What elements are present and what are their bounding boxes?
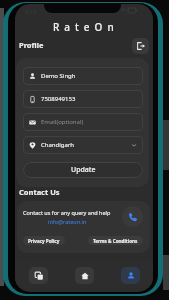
button[interactable]: Email(optional) <box>23 113 143 131</box>
staticText: RateOn <box>53 20 119 34</box>
staticText: Terms & Conditions <box>93 238 138 244</box>
button[interactable]: Terms & Conditions <box>88 236 143 245</box>
staticText: Privacy Policy <box>28 238 60 244</box>
button[interactable]: Demo Singh <box>23 67 143 85</box>
button[interactable]: Home <box>75 267 94 284</box>
button[interactable]: Documents <box>29 267 48 284</box>
button[interactable]: Privacy Policy <box>23 236 65 245</box>
staticText: Profile <box>19 40 44 50</box>
button[interactable]: Call <box>122 206 143 227</box>
staticText: Demo Singh <box>41 72 76 80</box>
button[interactable]: Chandigarh <box>23 136 143 154</box>
button[interactable]: Logout <box>132 38 149 54</box>
button[interactable]: 7508949153 <box>23 90 143 108</box>
button[interactable]: Update <box>23 162 143 178</box>
staticText: Contact us for any query and help <box>23 209 111 216</box>
button[interactable]: Profile <box>121 267 140 284</box>
staticText: Update <box>71 165 96 175</box>
staticText: 7508949153 <box>41 95 76 103</box>
staticText: Chandigarh <box>41 141 75 149</box>
staticText: info@rateon.in <box>48 218 87 225</box>
staticText: Contact Us <box>19 187 60 197</box>
staticText: Email(optional) <box>41 118 84 126</box>
